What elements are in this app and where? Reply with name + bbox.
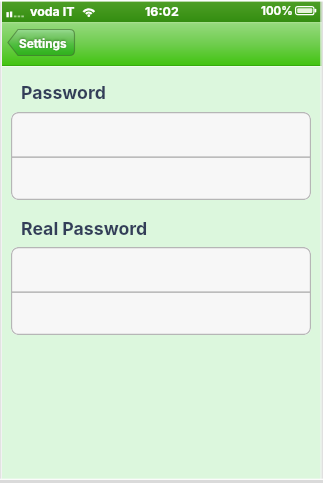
button[interactable]: Confirm password field [11,157,311,200]
other: Cellular signal strength [6,10,25,19]
staticText: Settings [19,37,67,51]
staticText: 100% [261,4,293,18]
other: Wi-Fi connected [81,5,98,18]
button[interactable]: Settings [7,29,75,56]
staticText: voda IT [30,4,75,19]
staticText: Password [21,82,106,103]
other: Battery full [295,6,318,17]
staticText: Real Password [21,218,148,239]
button[interactable]: Real password field [11,247,311,292]
button[interactable]: Confirm real password field [11,292,311,335]
staticText: 16:02 [145,4,179,19]
button[interactable]: Password field [11,112,311,157]
